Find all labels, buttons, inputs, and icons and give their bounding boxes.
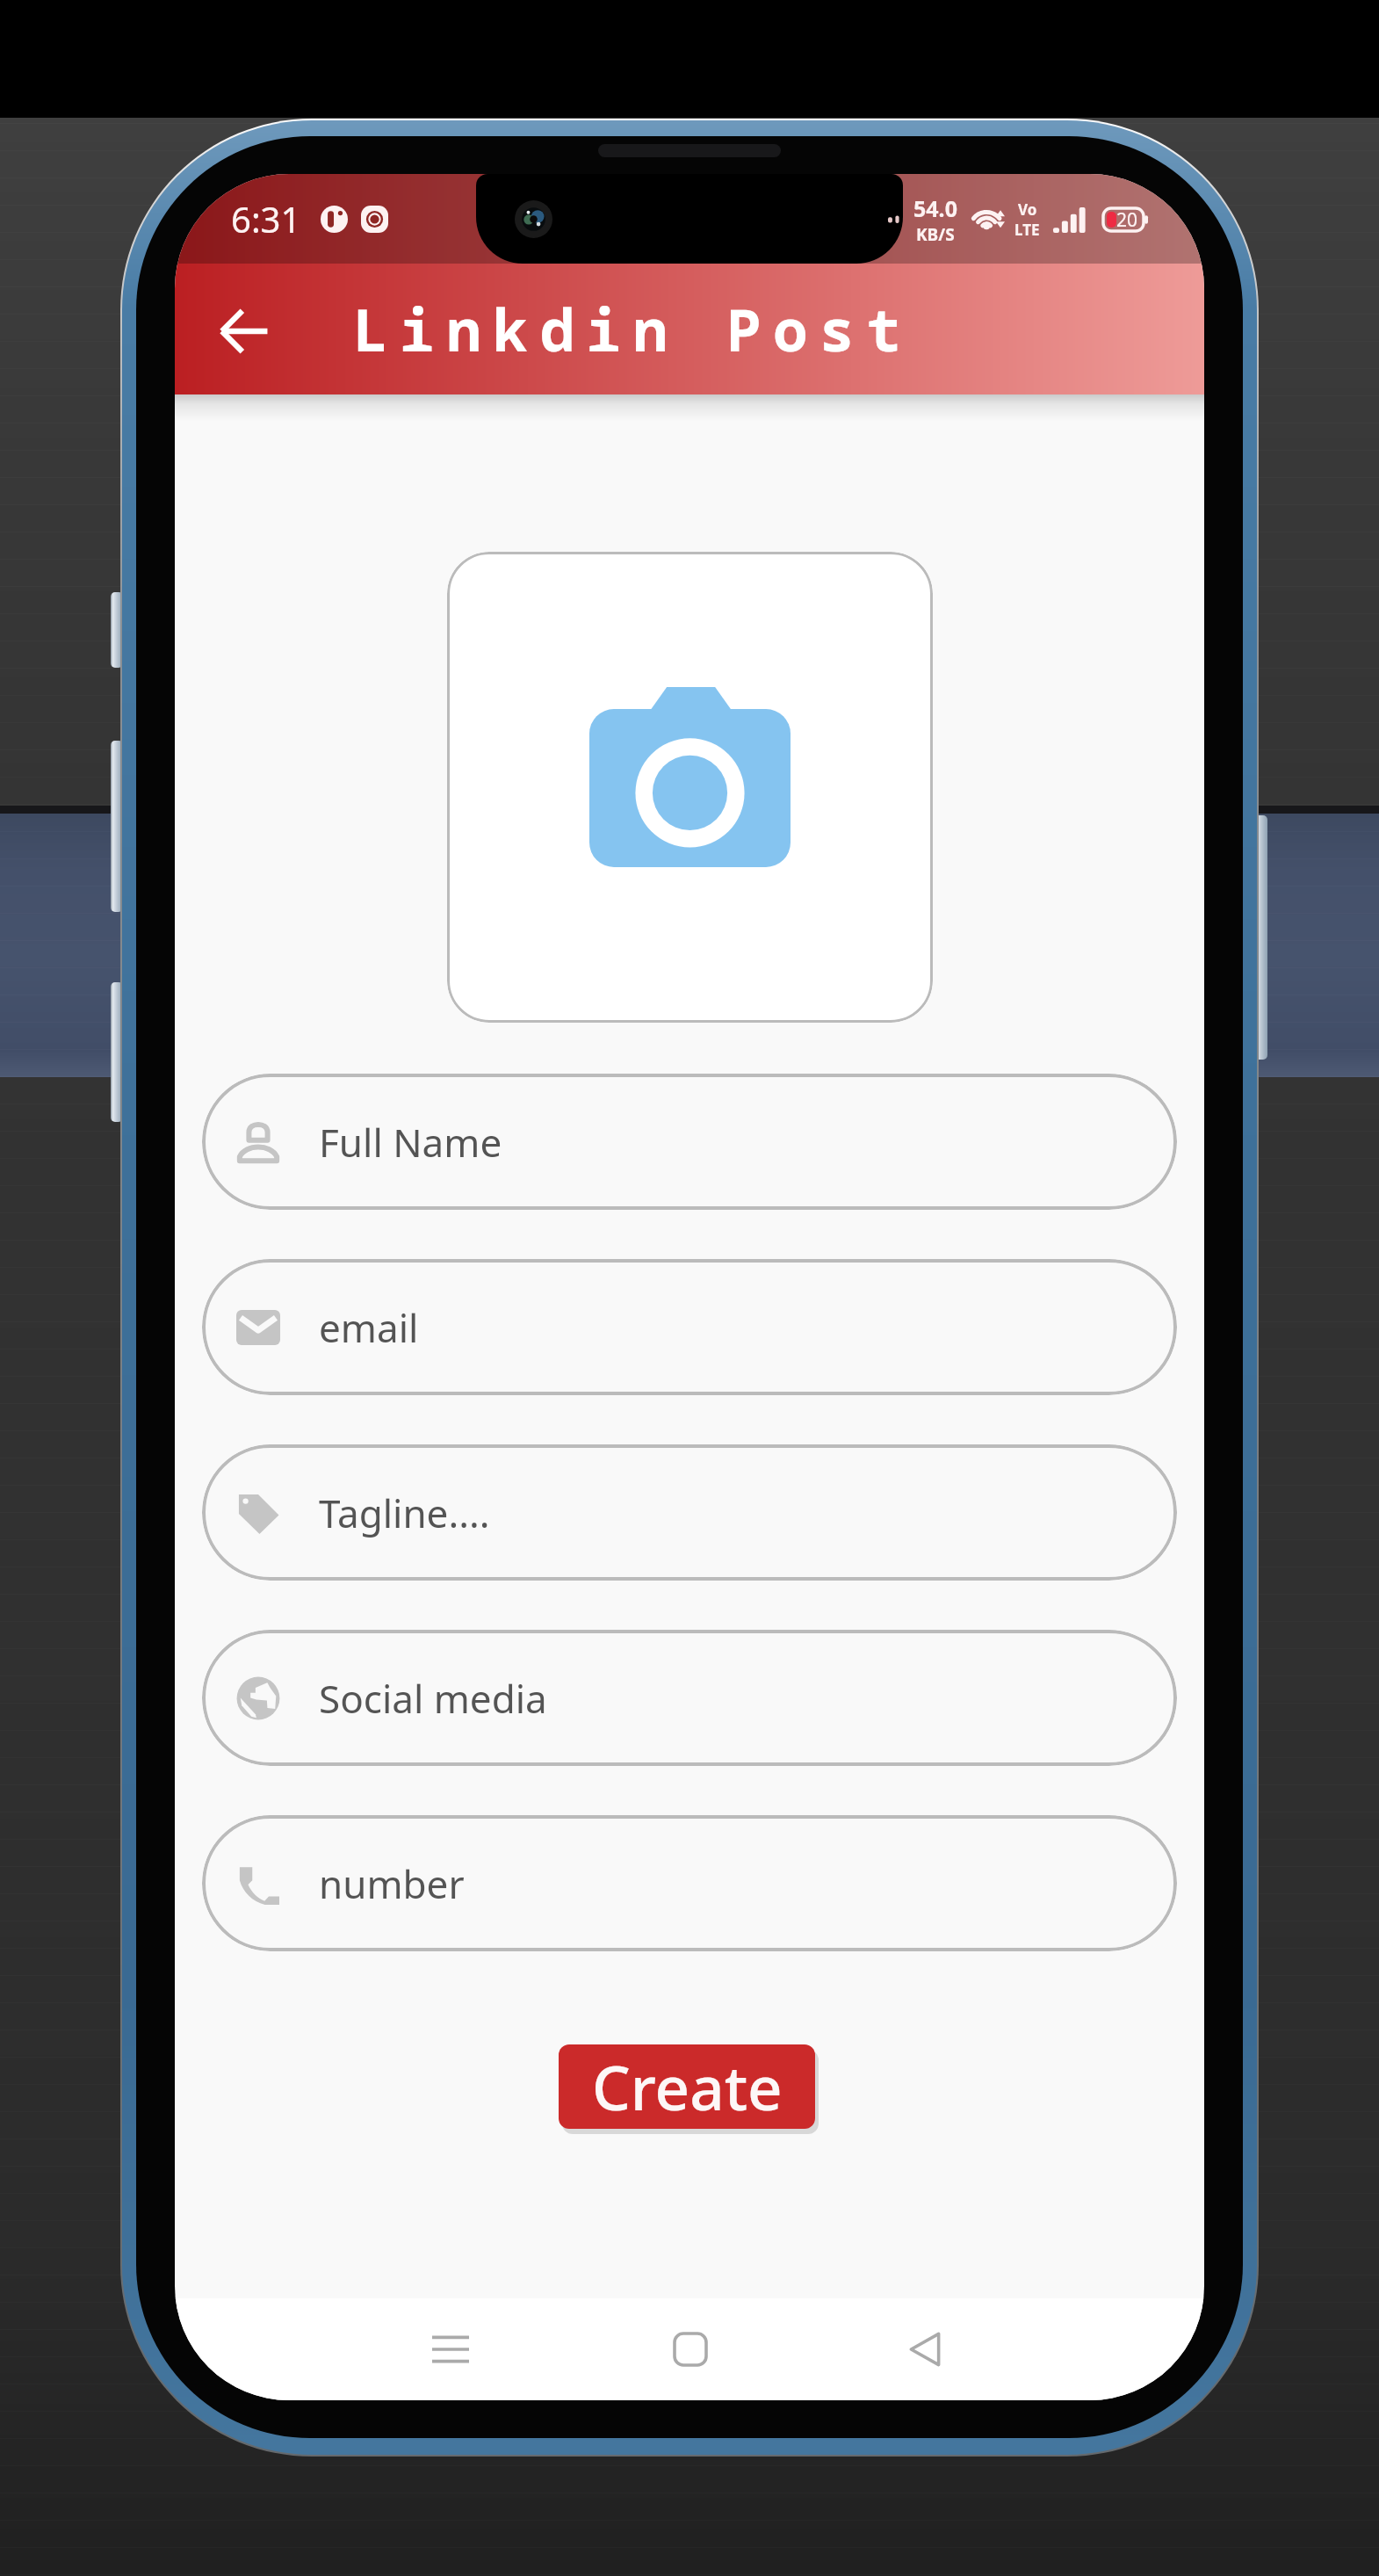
button[interactable]: Back <box>217 304 271 358</box>
staticText: LTE <box>1014 220 1040 240</box>
staticText: Social media <box>319 1672 547 1725</box>
button[interactable]: Home <box>638 2298 743 2400</box>
staticText: Tagline.... <box>319 1487 490 1539</box>
button[interactable]: number <box>202 1815 1177 1951</box>
button[interactable]: Create <box>559 2044 815 2129</box>
staticText: Full Name <box>319 1116 502 1169</box>
staticText: 6:31 <box>231 195 301 242</box>
staticText: 54.0 <box>913 193 957 223</box>
staticText: number <box>319 1857 465 1910</box>
button[interactable]: Social media <box>202 1630 1177 1766</box>
button[interactable]: Add photo <box>447 552 933 1023</box>
staticText: 20 <box>1116 207 1138 232</box>
staticText: KB/S <box>916 223 955 246</box>
staticText: Linkdin Post <box>353 289 913 368</box>
button[interactable]: Back <box>872 2298 978 2400</box>
button[interactable]: Full Name <box>202 1074 1177 1210</box>
button[interactable]: Recents <box>398 2298 503 2400</box>
staticText: Vo <box>1018 199 1037 220</box>
staticText: Create <box>592 2045 783 2128</box>
button[interactable]: email <box>202 1259 1177 1395</box>
staticText: email <box>319 1301 419 1354</box>
button[interactable]: Tagline.... <box>202 1444 1177 1581</box>
